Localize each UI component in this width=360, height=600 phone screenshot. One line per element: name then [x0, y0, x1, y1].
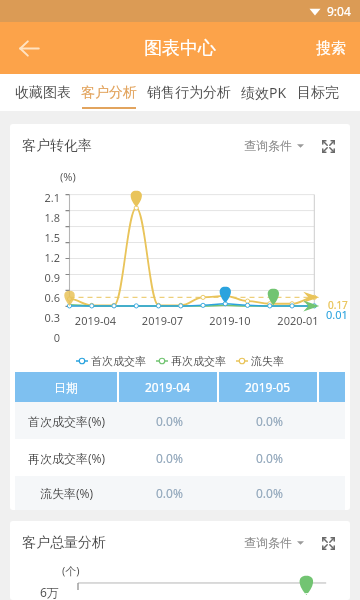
staticText: 0.0%	[256, 450, 283, 466]
button[interactable]: 查询条件	[241, 134, 307, 157]
staticText: 0.0%	[156, 413, 183, 429]
staticText: 目标完	[297, 84, 339, 102]
staticText: (个)	[62, 563, 80, 578]
staticText: 2019-07	[129, 313, 196, 328]
button[interactable]: 搜索	[310, 31, 352, 66]
staticText: 0.17	[328, 298, 348, 312]
staticText: 2020-01	[264, 313, 332, 328]
staticText: 搜索	[316, 39, 346, 58]
button[interactable]: 客户分析	[76, 74, 142, 111]
staticText: 0.3	[34, 310, 60, 325]
staticText: 首次成交率	[91, 354, 146, 368]
button[interactable]: 绩效PK	[236, 74, 292, 111]
staticText: 图表中心	[144, 37, 216, 60]
staticText: 0.0%	[156, 485, 183, 501]
staticText: 0.0%	[256, 413, 283, 429]
staticText: 2019-04	[145, 379, 191, 395]
button[interactable]: 销售行为分析	[142, 74, 236, 111]
staticText: 5.26万	[297, 590, 324, 600]
staticText: 收藏图表	[15, 84, 71, 102]
button[interactable]: 目标完	[292, 74, 344, 111]
staticText: 日期	[54, 380, 78, 395]
staticText: 销售行为分析	[147, 84, 231, 102]
button[interactable]: 流失率	[231, 354, 289, 368]
staticText: 再次成交率(%)	[28, 450, 106, 466]
staticText: 1.8	[34, 210, 60, 225]
button[interactable]: Fullscreen	[317, 135, 339, 157]
staticText: 0.0%	[156, 450, 183, 466]
button[interactable]: Fullscreen	[317, 532, 339, 554]
staticText: 查询条件	[244, 138, 292, 153]
button[interactable]: 再次成交率(%)	[15, 439, 345, 476]
staticText: 0.0%	[256, 485, 283, 501]
button[interactable]: 查询条件	[241, 531, 307, 554]
staticText: 0.01	[326, 307, 348, 322]
staticText: (%)	[60, 169, 76, 184]
staticText: 客户分析	[81, 84, 137, 102]
staticText: 再次成交率	[171, 354, 226, 368]
staticText: 2019-10	[196, 313, 264, 328]
staticText: 1.5	[34, 230, 60, 245]
button[interactable]: 流失率(%)	[15, 476, 345, 510]
button[interactable]: 首次成交率(%)	[15, 402, 345, 439]
staticText: 查询条件	[244, 535, 292, 550]
staticText: 绩效PK	[241, 83, 287, 102]
staticText: 客户转化率	[22, 137, 92, 155]
staticText: 9:04	[327, 3, 351, 19]
staticText: 2019-05	[245, 379, 291, 395]
button[interactable]: Back	[6, 25, 52, 71]
staticText: 1.2	[34, 250, 60, 265]
staticText: 2.1	[34, 190, 60, 205]
staticText: 0.9	[34, 270, 60, 285]
staticText: 流失率	[251, 354, 284, 368]
staticText: 0	[34, 330, 60, 345]
button[interactable]: 再次成交率	[151, 354, 231, 368]
button[interactable]: 收藏图表	[10, 74, 76, 111]
staticText: 首次成交率(%)	[28, 413, 106, 429]
button[interactable]: 首次成交率	[71, 354, 151, 368]
staticText: 客户总量分析	[22, 534, 106, 552]
staticText: 0.6	[34, 290, 60, 305]
staticText: 6万	[40, 584, 59, 600]
staticText: 流失率(%)	[40, 485, 94, 501]
staticText: 2019-04	[62, 313, 129, 328]
